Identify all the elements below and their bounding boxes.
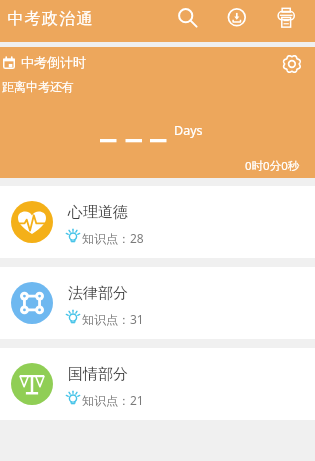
- staticText: 法律部分: [68, 284, 128, 303]
- staticText: 知识点：31: [82, 311, 144, 327]
- staticText: 国情部分: [68, 365, 128, 384]
- button[interactable]: 国情部分: [0, 348, 315, 420]
- staticText: 心理道德: [68, 203, 128, 222]
- staticText: 知识点：21: [82, 392, 144, 408]
- button[interactable]: Download: [221, 2, 253, 34]
- button[interactable]: 心理道德: [0, 186, 315, 258]
- staticText: Days: [174, 122, 203, 139]
- button[interactable]: Search: [171, 3, 203, 35]
- button[interactable]: Settings: [279, 52, 305, 78]
- button[interactable]: 中考倒计时: [0, 47, 315, 178]
- staticText: 知识点：28: [82, 230, 144, 246]
- staticText: 中考倒计时: [21, 54, 86, 70]
- staticText: 中考政治通: [7, 9, 93, 29]
- button[interactable]: 法律部分: [0, 267, 315, 339]
- staticText: 0时0分0秒: [245, 158, 300, 174]
- staticText: 距离中考还有: [2, 79, 74, 94]
- button[interactable]: Print: [270, 1, 302, 33]
